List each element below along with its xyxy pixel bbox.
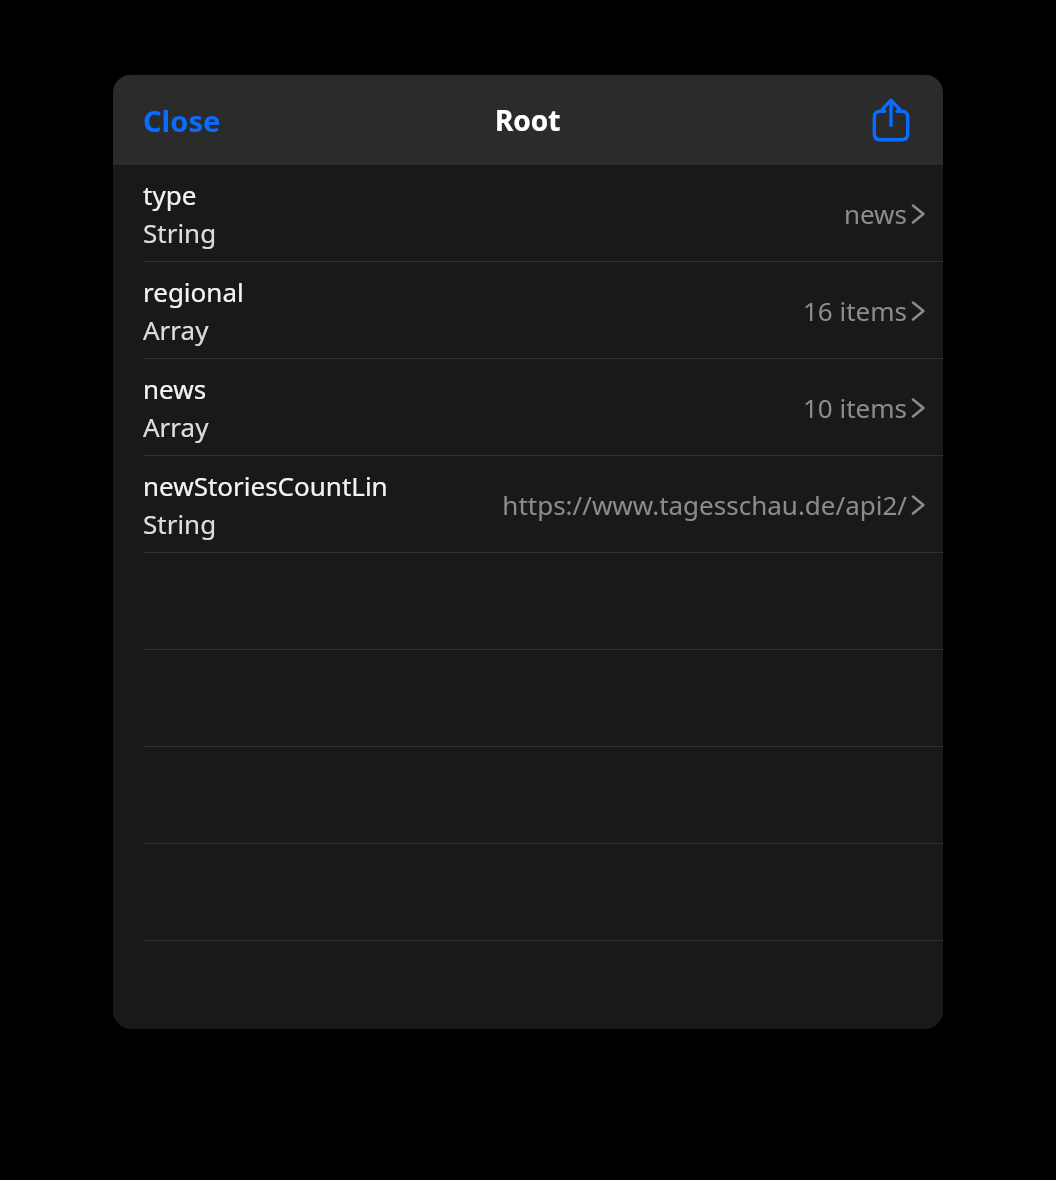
staticText: String [143,215,217,250]
button[interactable]: Close [127,93,237,148]
staticText: Array [143,312,209,347]
button[interactable]: type [113,165,943,262]
staticText: regional [143,274,244,309]
staticText: news [143,371,207,406]
staticText: String [143,506,217,541]
staticText: newStoriesCountLink [143,468,393,503]
button[interactable]: Share [865,94,917,146]
staticText: 16 items [802,293,907,328]
staticText: Close [143,101,221,140]
button[interactable]: news [113,359,943,456]
staticText: type [143,177,197,212]
staticText: Root [495,101,561,139]
button[interactable]: newStoriesCountLink [113,456,943,553]
staticText: https://www.tagesschau.de/api2/indexfee.… [397,487,907,522]
staticText: news [843,196,907,231]
staticText: Array [143,409,209,444]
staticText: 10 items [802,390,907,425]
button[interactable]: regional [113,262,943,359]
